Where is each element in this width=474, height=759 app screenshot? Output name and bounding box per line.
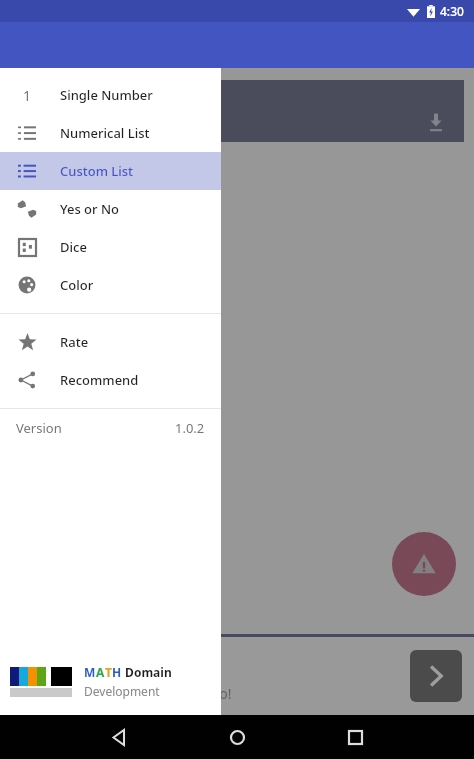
button[interactable]: Home (215, 715, 259, 759)
staticText: Custom List (24, 88, 118, 111)
staticText: Custom List (60, 162, 134, 180)
button[interactable]: Back (97, 715, 141, 759)
staticText: You're testing AdMob. Way to go! (14, 684, 232, 703)
staticText: Recommend (60, 371, 139, 389)
staticText: Dice (60, 238, 87, 256)
button[interactable]: Recommend (0, 361, 221, 399)
button[interactable]: Open ad (410, 650, 462, 702)
button[interactable]: Rate (0, 323, 221, 361)
button[interactable]: Yes or No (0, 190, 221, 228)
staticText: Numerical List (60, 124, 150, 142)
staticText: M (84, 664, 96, 680)
staticText: 1 (23, 86, 32, 105)
staticText: T (105, 664, 112, 680)
button[interactable]: Recents (333, 715, 377, 759)
staticText: 4:30 (440, 3, 464, 19)
staticText: Test Ad Banner (14, 649, 163, 678)
button[interactable]: Color (0, 266, 221, 304)
staticText: Yes or No (60, 200, 119, 218)
button[interactable]: Numerical List (0, 114, 221, 152)
staticText: Domain (122, 664, 172, 680)
staticText: 1.0.2 (175, 419, 205, 437)
button[interactable]: Dice (0, 228, 221, 266)
staticText: H (112, 664, 122, 680)
staticText: Rate (60, 333, 89, 351)
staticText: Color (60, 276, 94, 294)
button[interactable]: Save (424, 110, 448, 134)
staticText: Single Number (60, 86, 153, 104)
staticText: A (96, 664, 105, 680)
button[interactable]: 1 (0, 76, 221, 114)
button[interactable]: Warning (392, 532, 456, 596)
staticText: Development (84, 683, 160, 699)
button[interactable]: Custom List (0, 152, 221, 190)
staticText: Version (16, 419, 62, 437)
